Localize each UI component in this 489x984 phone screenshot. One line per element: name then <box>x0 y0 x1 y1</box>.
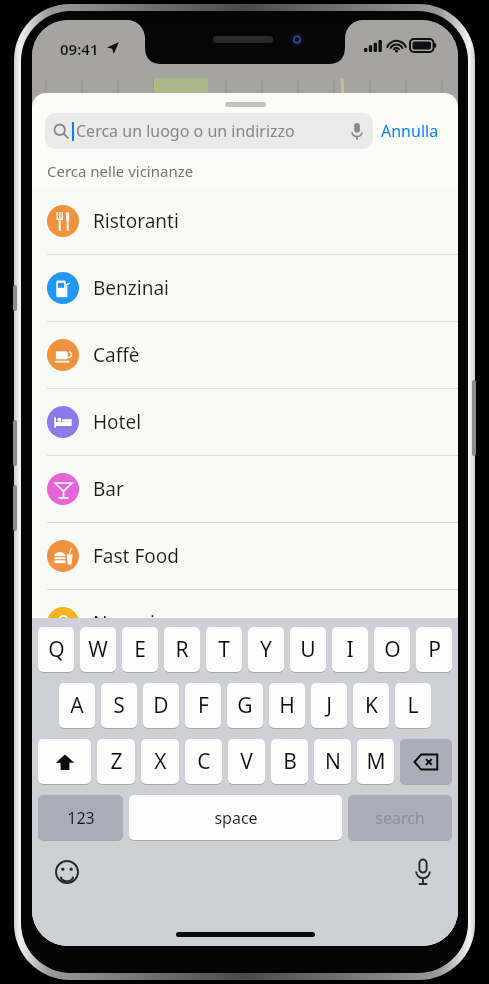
button[interactable]: V <box>228 739 265 784</box>
button[interactable]: P <box>416 627 452 672</box>
staticText: Q <box>48 635 65 664</box>
button[interactable]: Q <box>38 627 74 672</box>
other: Emoji <box>55 860 79 884</box>
button[interactable]: Bar <box>32 456 458 523</box>
staticText: V <box>240 747 253 776</box>
staticText: G <box>237 691 253 720</box>
button[interactable]: C <box>185 739 222 784</box>
button[interactable]: Annulla <box>373 114 447 148</box>
button[interactable]: Y <box>248 627 284 672</box>
staticText: Fast Food <box>93 543 179 569</box>
button[interactable]: Benzinai <box>32 255 458 322</box>
button[interactable]: F <box>185 683 221 728</box>
staticText: J <box>326 691 332 720</box>
staticText: Caffè <box>93 342 140 368</box>
button[interactable]: S <box>101 683 137 728</box>
staticText: N <box>325 747 341 776</box>
staticText: T <box>218 635 230 664</box>
button[interactable]: Fast Food <box>32 523 458 590</box>
staticText: S <box>113 691 125 720</box>
button[interactable]: W <box>80 627 116 672</box>
staticText: 09:41 <box>60 39 99 59</box>
button[interactable]: R <box>164 627 200 672</box>
staticText: Benzinai <box>93 275 169 301</box>
staticText: space <box>214 807 258 829</box>
button[interactable]: Ristoranti <box>32 188 458 255</box>
button[interactable]: search <box>348 795 452 840</box>
button[interactable]: T <box>206 627 242 672</box>
staticText: P <box>428 635 441 664</box>
staticText: Y <box>260 635 272 664</box>
button[interactable]: E <box>122 627 158 672</box>
button[interactable]: U <box>290 627 326 672</box>
button[interactable]: M <box>357 739 394 784</box>
button[interactable]: Hotel <box>32 389 458 456</box>
button[interactable]: B <box>271 739 308 784</box>
staticText: Cerca un luogo o un indirizzo <box>76 120 295 142</box>
button[interactable]: A <box>59 683 95 728</box>
staticText: Negozi <box>93 610 155 636</box>
button[interactable]: I <box>332 627 368 672</box>
staticText: E <box>134 635 146 664</box>
staticText: X <box>154 747 167 776</box>
button[interactable]: D <box>143 683 179 728</box>
button[interactable]: G <box>227 683 263 728</box>
button[interactable]: K <box>353 683 389 728</box>
button[interactable]: Cancella <box>400 739 452 784</box>
staticText: O <box>384 635 401 664</box>
button[interactable]: Caffè <box>32 322 458 389</box>
button[interactable]: N <box>314 739 351 784</box>
other: Dettatura <box>351 123 363 140</box>
staticText: C <box>197 747 211 776</box>
button[interactable]: Negozi <box>32 590 458 657</box>
button[interactable]: Maiuscole <box>38 739 91 784</box>
staticText: H <box>279 691 295 720</box>
staticText: Annulla <box>381 120 439 142</box>
staticText: R <box>175 635 189 664</box>
staticText: Z <box>110 747 123 776</box>
button[interactable]: O <box>374 627 410 672</box>
staticText: L <box>407 691 419 720</box>
button[interactable]: Cerca un luogo o un indirizzo <box>45 113 373 149</box>
button[interactable]: Z <box>97 739 135 784</box>
button[interactable]: X <box>141 739 179 784</box>
staticText: I <box>346 635 354 664</box>
staticText: Hotel <box>93 409 142 435</box>
staticText: 123 <box>67 807 95 829</box>
staticText: M <box>366 747 386 776</box>
button[interactable]: H <box>269 683 305 728</box>
button[interactable]: L <box>395 683 431 728</box>
button[interactable]: J <box>311 683 347 728</box>
staticText: Bar <box>93 476 124 502</box>
staticText: Ristoranti <box>93 208 179 234</box>
staticText: search <box>375 807 425 829</box>
staticText: W <box>88 635 108 664</box>
staticText: B <box>283 747 297 776</box>
staticText: A <box>70 691 84 720</box>
button[interactable]: space <box>129 795 342 840</box>
other: Dettatura <box>414 859 432 885</box>
staticText: D <box>153 691 169 720</box>
button[interactable]: 123 <box>38 795 123 840</box>
staticText: F <box>198 691 209 720</box>
staticText: K <box>365 691 378 720</box>
staticText: U <box>300 635 316 664</box>
staticText: Cerca nelle vicinanze <box>47 161 194 181</box>
